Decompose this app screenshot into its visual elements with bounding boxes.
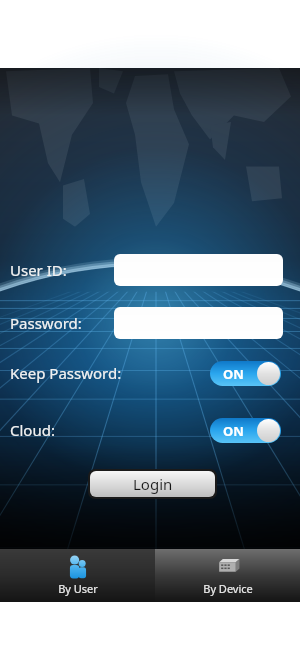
staticText: Password:	[10, 313, 82, 333]
staticText: ON	[223, 365, 244, 383]
button[interactable]: By Device	[155, 549, 300, 602]
staticText: By User	[58, 581, 98, 596]
staticText: ON	[223, 422, 244, 440]
staticText: By Device	[203, 581, 253, 596]
button[interactable]: By User	[0, 549, 155, 602]
button[interactable]	[114, 307, 283, 339]
staticText: Cloud:	[10, 420, 55, 440]
button[interactable]	[114, 254, 283, 286]
button[interactable]: ON	[210, 418, 281, 443]
staticText: Keep Password:	[10, 363, 122, 383]
staticText: User ID:	[10, 260, 67, 280]
button[interactable]: ON	[210, 361, 281, 386]
staticText: Login	[133, 474, 173, 494]
button[interactable]: Login	[90, 471, 215, 497]
